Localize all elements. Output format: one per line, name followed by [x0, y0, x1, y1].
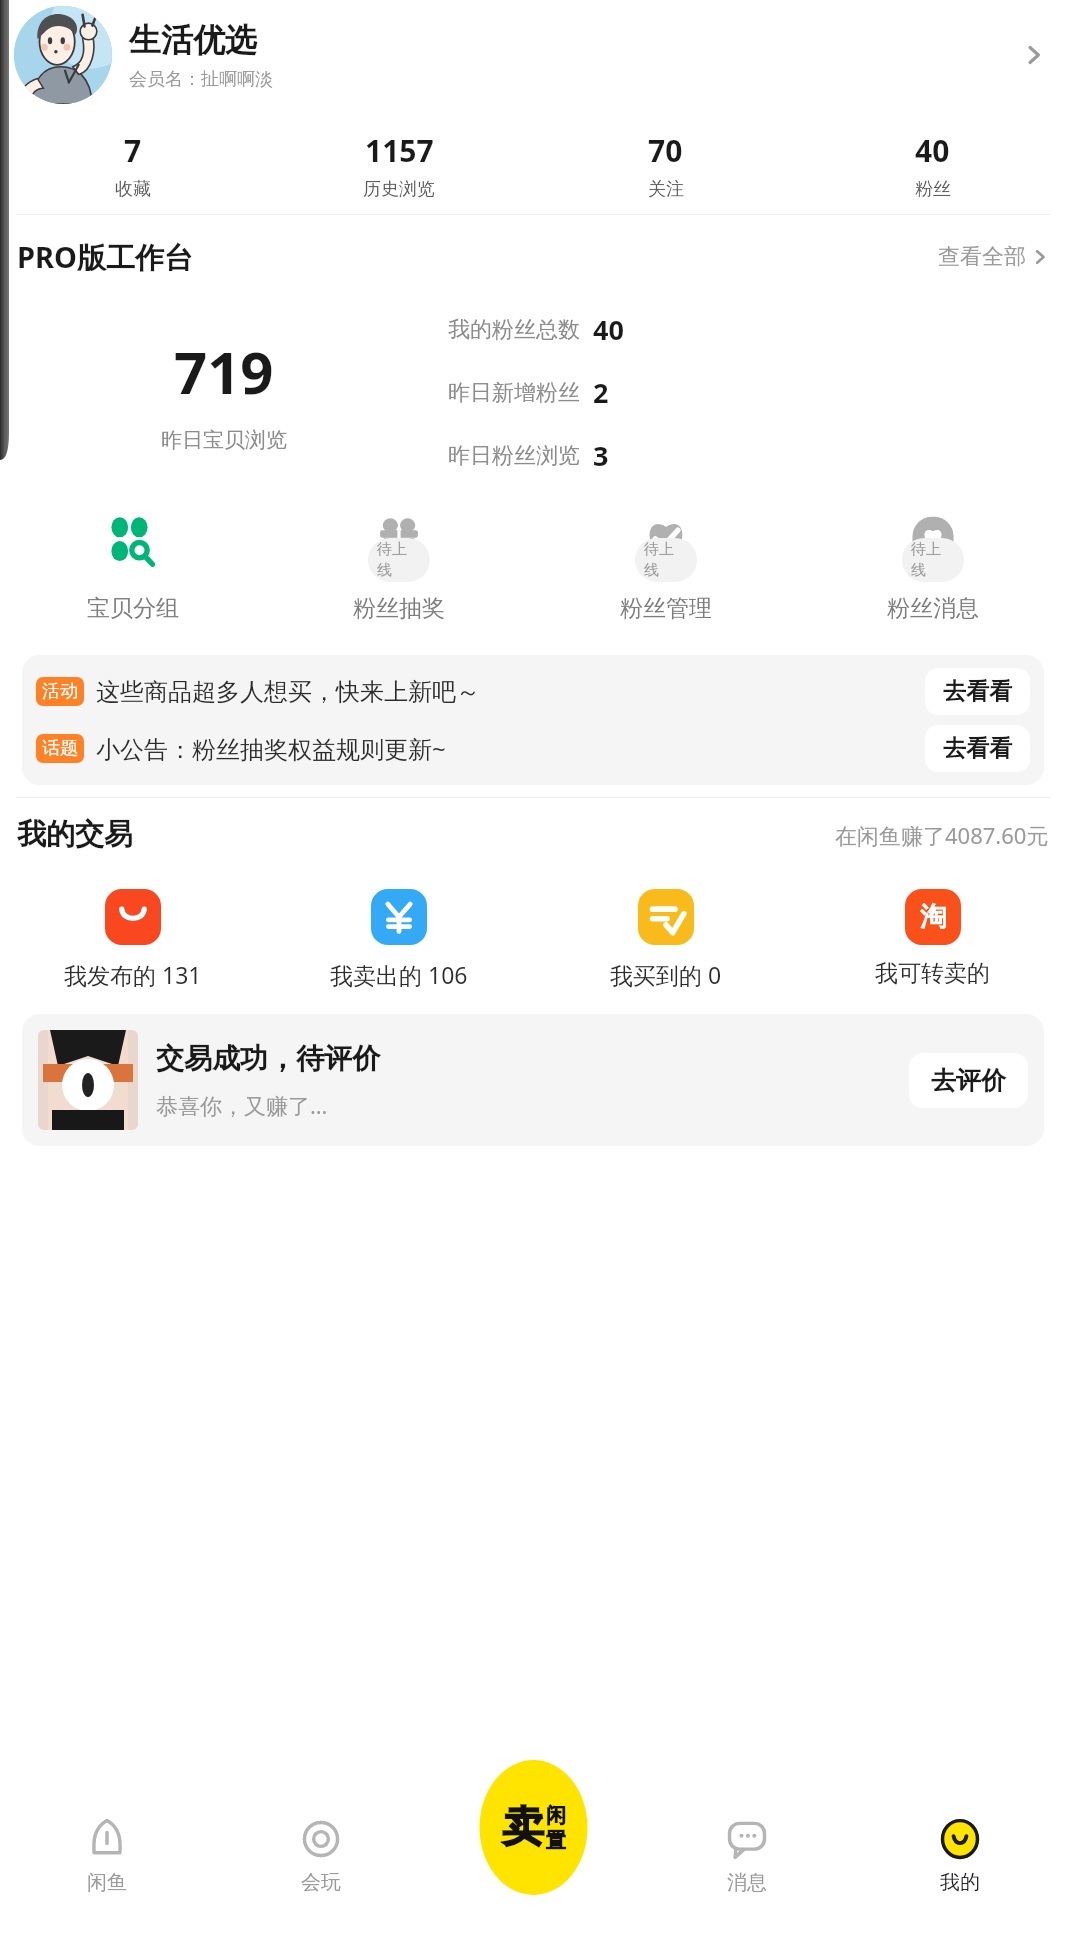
staticText: 小公告：粉丝抽奖权益规则更新~: [96, 732, 446, 765]
button[interactable]: 去看看: [925, 668, 1030, 715]
button[interactable]: 待上线: [799, 514, 1066, 623]
staticText: 交易成功，待评价: [156, 1041, 380, 1076]
button[interactable]: 昨日粉丝浏览: [448, 437, 609, 474]
button[interactable]: PRO版工作台: [17, 237, 1049, 277]
button[interactable]: 生活优选: [14, 6, 1054, 104]
button[interactable]: 待上线: [266, 514, 532, 623]
button[interactable]: 我买到的 0: [532, 889, 799, 990]
staticText: 待上线: [911, 540, 955, 580]
staticText: 我买到的 0: [610, 959, 722, 990]
staticText: 关注: [648, 178, 684, 201]
button[interactable]: 昨日新增粉丝: [448, 374, 609, 411]
staticText: 7: [124, 130, 142, 171]
button[interactable]: 活动: [22, 663, 1044, 720]
button[interactable]: 交易成功，待评价: [22, 1014, 1044, 1146]
staticText: PRO版工作台: [17, 237, 193, 277]
button[interactable]: 消息: [640, 1816, 853, 1895]
staticText: 719: [174, 332, 274, 411]
staticText: 生活优选: [129, 20, 257, 60]
staticText: 1157: [365, 130, 434, 171]
staticText: 我的: [940, 1870, 980, 1895]
staticText: 3: [593, 437, 609, 474]
staticText: 我卖出的 106: [330, 959, 468, 990]
button[interactable]: 我发布的 131: [0, 889, 266, 990]
button[interactable]: 待上线: [532, 514, 799, 623]
staticText: 查看全部: [938, 243, 1026, 271]
button[interactable]: 1157: [266, 130, 532, 201]
staticText: 2: [593, 374, 609, 411]
button[interactable]: 我的交易: [17, 816, 1049, 853]
button[interactable]: 我的: [853, 1816, 1066, 1895]
button[interactable]: 淘: [799, 889, 1066, 988]
button[interactable]: 闲鱼: [0, 1816, 214, 1895]
button[interactable]: 70: [532, 130, 799, 201]
staticText: 话题: [42, 737, 78, 760]
staticText: 70: [648, 130, 683, 171]
staticText: 去看看: [943, 734, 1012, 763]
button[interactable]: 40: [799, 130, 1066, 201]
staticText: 去评价: [931, 1065, 1006, 1096]
button[interactable]: 卖闲置: [466, 1760, 601, 1895]
staticText: 粉丝抽奖: [353, 594, 445, 623]
button[interactable]: 719: [0, 332, 448, 453]
staticText: 待上线: [644, 540, 688, 580]
staticText: 卖: [502, 1801, 544, 1854]
staticText: 昨日粉丝浏览: [448, 442, 580, 470]
staticText: 我的交易: [17, 816, 133, 853]
staticText: 昨日宝贝浏览: [161, 427, 287, 453]
staticText: 闲: [546, 1803, 566, 1828]
staticText: 活动: [42, 680, 78, 703]
staticText: 40: [915, 130, 950, 171]
button[interactable]: 话题: [22, 720, 1044, 777]
button[interactable]: 去看看: [925, 725, 1030, 772]
staticText: 粉丝: [915, 178, 951, 201]
staticText: 宝贝分组: [87, 594, 179, 623]
staticText: 置: [546, 1828, 566, 1853]
button[interactable]: 去评价: [909, 1053, 1028, 1108]
staticText: 消息: [727, 1870, 767, 1895]
staticText: 淘: [920, 900, 947, 934]
staticText: 去看看: [943, 677, 1012, 706]
staticText: 我可转卖的: [875, 959, 990, 988]
button[interactable]: 宝贝分组: [0, 514, 266, 623]
staticText: 粉丝消息: [887, 594, 979, 623]
staticText: 恭喜你，又赚了…: [156, 1090, 328, 1120]
staticText: 40: [593, 311, 624, 348]
staticText: 会员名：扯啊啊淡: [129, 68, 273, 91]
staticText: 这些商品超多人想买，快来上新吧～: [96, 677, 480, 707]
staticText: 我的粉丝总数: [448, 316, 580, 344]
button[interactable]: 会玩: [214, 1816, 427, 1895]
staticText: 历史浏览: [363, 178, 435, 201]
button[interactable]: 我的粉丝总数: [448, 311, 624, 348]
staticText: 我发布的 131: [64, 959, 202, 990]
staticText: 收藏: [115, 178, 151, 201]
staticText: 待上线: [377, 540, 421, 580]
staticText: 会玩: [301, 1870, 341, 1895]
button[interactable]: 查看资料: [1014, 35, 1054, 75]
button[interactable]: 我卖出的 106: [266, 889, 532, 990]
staticText: 在闲鱼赚了4087.60元: [835, 820, 1049, 850]
staticText: 昨日新增粉丝: [448, 379, 580, 407]
staticText: 闲鱼: [87, 1870, 127, 1895]
staticText: 粉丝管理: [620, 594, 712, 623]
button[interactable]: 7: [0, 130, 266, 201]
